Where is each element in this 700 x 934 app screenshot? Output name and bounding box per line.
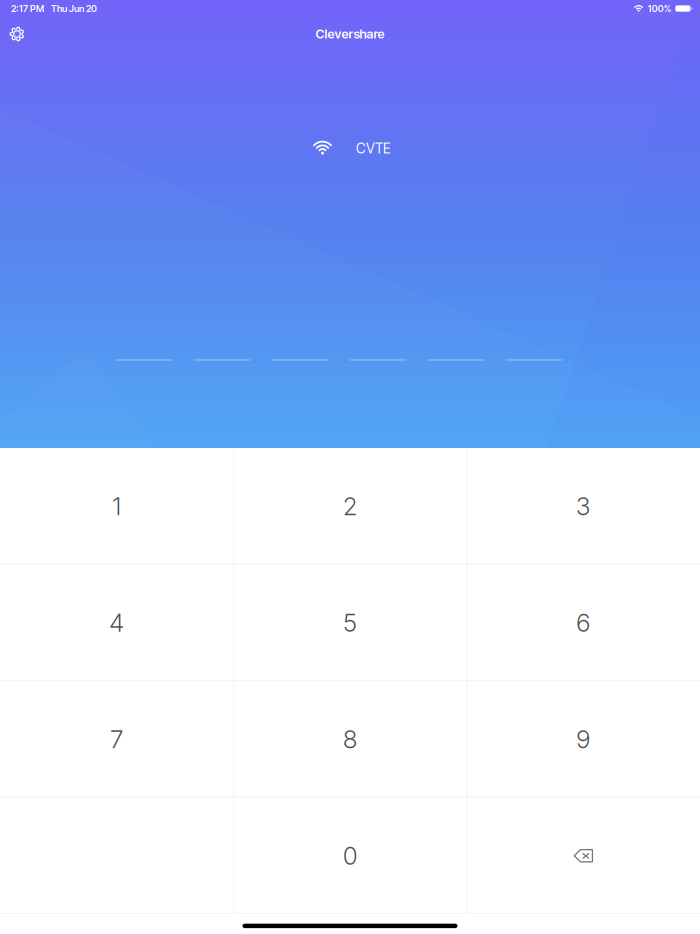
staticText: 4 xyxy=(109,608,124,638)
button[interactable]: Settings xyxy=(0,16,34,52)
button[interactable]: 1 xyxy=(0,448,233,564)
staticText: 2 xyxy=(343,491,357,521)
button[interactable]: 6 xyxy=(467,564,700,681)
button[interactable]: 0 xyxy=(233,797,467,914)
button[interactable]: 5 xyxy=(233,564,467,681)
staticText: 9 xyxy=(576,724,590,754)
button[interactable]: 3 xyxy=(467,448,700,564)
staticText: 8 xyxy=(343,724,357,754)
button[interactable]: 8 xyxy=(233,681,467,797)
staticText: 0 xyxy=(343,841,357,871)
staticText: 5 xyxy=(343,608,357,638)
staticText: 100% xyxy=(648,3,672,14)
staticText: 7 xyxy=(110,724,123,754)
button[interactable]: Delete xyxy=(467,797,700,914)
staticText: 2:17 PM xyxy=(11,3,44,14)
staticText: CVTE xyxy=(356,140,391,157)
staticText: Clevershare xyxy=(315,26,384,42)
staticText: 1 xyxy=(112,491,121,521)
staticText: 6 xyxy=(576,608,590,638)
button[interactable]: 9 xyxy=(467,681,700,797)
button[interactable]: 4 xyxy=(0,564,233,681)
staticText: Thu Jun 20 xyxy=(51,3,97,14)
staticText: 3 xyxy=(576,491,591,521)
button[interactable]: 2 xyxy=(233,448,467,564)
button[interactable]: 7 xyxy=(0,681,233,797)
